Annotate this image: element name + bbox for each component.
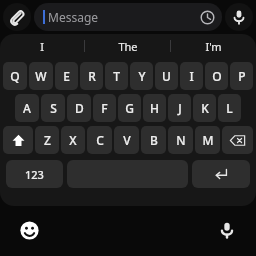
button[interactable]: Y (130, 62, 153, 90)
button[interactable]: I (180, 62, 203, 90)
button[interactable]: Emoji (16, 217, 42, 243)
staticText: O (212, 68, 222, 84)
button[interactable]: Voice typing (214, 217, 240, 243)
staticText: 123 (25, 167, 44, 182)
staticText: Y (138, 68, 146, 84)
button[interactable]: C (87, 126, 112, 154)
button[interactable]: N (168, 126, 193, 154)
button[interactable]: J (168, 94, 191, 122)
staticText: P (238, 68, 246, 84)
button[interactable]: I'm (171, 34, 256, 58)
button[interactable]: Backspace (222, 126, 253, 154)
button[interactable]: K (193, 94, 216, 122)
button[interactable]: M (195, 126, 220, 154)
button[interactable]: D (67, 94, 91, 122)
button[interactable]: G (118, 94, 141, 122)
staticText: U (162, 68, 171, 84)
staticText: L (226, 100, 233, 116)
staticText: D (75, 100, 84, 116)
staticText: Q (10, 68, 20, 84)
button[interactable]: P (230, 62, 253, 90)
button[interactable]: H (143, 94, 166, 122)
button[interactable]: 123 (6, 160, 63, 188)
button[interactable]: Message (34, 3, 222, 31)
staticText: E (63, 68, 70, 84)
staticText: A (23, 100, 31, 116)
staticText: The (118, 39, 138, 54)
button[interactable]: E (55, 62, 78, 90)
staticText: T (113, 68, 120, 84)
button[interactable]: S (41, 94, 65, 122)
button[interactable]: A (15, 94, 39, 122)
button[interactable]: Recent (198, 8, 216, 26)
staticText: W (35, 68, 47, 84)
staticText: N (176, 132, 186, 148)
staticText: B (150, 132, 158, 148)
staticText: F (101, 100, 108, 116)
button[interactable]: The (85, 34, 170, 58)
button[interactable]: Enter (192, 160, 250, 188)
button[interactable]: R (80, 62, 103, 90)
button[interactable]: Attach (3, 3, 31, 31)
button[interactable]: O (205, 62, 228, 90)
button[interactable]: L (218, 94, 241, 122)
button[interactable]: Shift (3, 126, 33, 154)
button[interactable]: Q (3, 62, 27, 90)
button[interactable]: I (0, 34, 84, 58)
staticText: I'm (205, 39, 222, 54)
staticText: Z (44, 132, 51, 148)
button[interactable]: U (155, 62, 178, 90)
button[interactable]: B (141, 126, 166, 154)
staticText: M (202, 132, 214, 148)
staticText: S (50, 100, 57, 116)
staticText: V (123, 132, 131, 148)
button[interactable]: V (114, 126, 139, 154)
button[interactable]: Voice input (225, 3, 253, 31)
staticText: X (69, 132, 77, 148)
staticText: R (88, 68, 96, 84)
staticText: H (150, 100, 159, 116)
staticText: Message (48, 9, 99, 25)
button[interactable]: T (105, 62, 128, 90)
staticText: G (125, 100, 134, 116)
button[interactable]: Z (35, 126, 59, 154)
button[interactable]: F (93, 94, 116, 122)
staticText: C (96, 132, 104, 148)
staticText: J (178, 100, 182, 116)
staticText: I (40, 39, 44, 54)
button[interactable]: X (61, 126, 85, 154)
button[interactable]: W (29, 62, 53, 90)
staticText: I (189, 68, 194, 84)
staticText: K (201, 100, 209, 116)
